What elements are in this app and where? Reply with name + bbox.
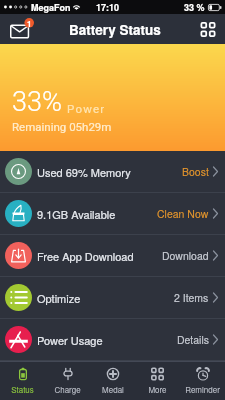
staticText: 9.1GB Available [37, 206, 116, 222]
staticText: 1 [27, 18, 32, 29]
button[interactable]: Charge [45, 362, 90, 400]
staticText: Status [11, 384, 34, 395]
staticText: 17:10 [96, 1, 120, 14]
button[interactable]: Medal [90, 362, 135, 400]
button[interactable]: Status [0, 362, 45, 400]
staticText: Power Usage [37, 332, 103, 348]
staticText: Used 69% Memory [37, 164, 131, 180]
staticText: 2 Items [174, 290, 209, 305]
staticText: Charge [54, 384, 81, 395]
staticText: Details [177, 332, 209, 347]
staticText: More [148, 384, 167, 395]
button[interactable]: 9.1GB Available [0, 193, 225, 234]
staticText: Optimize [37, 290, 81, 306]
staticText: Battery Status [69, 20, 161, 39]
button[interactable]: Optimize [0, 277, 225, 318]
staticText: 33 % [184, 1, 205, 14]
button[interactable]: Apps grid [200, 22, 216, 37]
staticText: Medal [102, 384, 124, 395]
staticText: Remaining 05h29m [12, 120, 112, 133]
staticText: Clean Now [157, 206, 209, 221]
button[interactable]: Power Usage [0, 319, 225, 360]
staticText: Boost [182, 164, 209, 179]
button[interactable]: Used 69% Memory [0, 151, 225, 192]
button[interactable]: More [135, 362, 180, 400]
button[interactable]: Reminder [180, 362, 225, 400]
staticText: MegaFon [31, 1, 71, 14]
staticText: Download [162, 248, 209, 263]
staticText: Free App Download [37, 248, 134, 264]
staticText: Reminder [185, 384, 220, 395]
staticText: Power [67, 102, 106, 115]
button[interactable]: Free App Download [0, 235, 225, 276]
staticText: 33% [12, 86, 62, 118]
button[interactable]: Messages [10, 18, 34, 40]
